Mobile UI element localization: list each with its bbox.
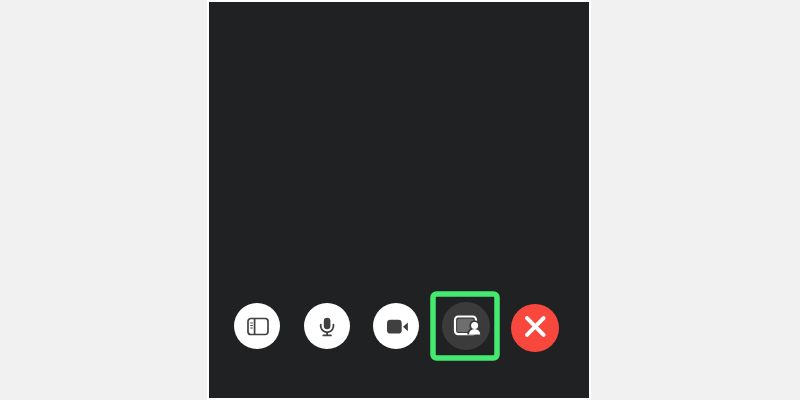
- button[interactable]: [304, 303, 350, 349]
- button[interactable]: [373, 303, 419, 349]
- button[interactable]: [511, 304, 559, 352]
- button[interactable]: [234, 303, 280, 349]
- button[interactable]: [442, 302, 490, 350]
